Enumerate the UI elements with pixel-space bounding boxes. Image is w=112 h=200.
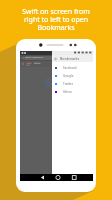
button[interactable]: Yahoo bbox=[52, 88, 93, 96]
staticText: https://www.goo bbox=[25, 56, 44, 59]
staticText: Facebook bbox=[63, 66, 77, 70]
staticText: Swift on screen from right to left to op… bbox=[0, 7, 112, 32]
button[interactable]: Back bbox=[52, 55, 60, 62]
button[interactable]: Twitter bbox=[52, 80, 93, 88]
staticText: Twitter bbox=[63, 82, 74, 86]
staticText: o bbox=[51, 77, 56, 88]
staticText: o bbox=[56, 77, 61, 88]
button[interactable]: Google bbox=[52, 72, 93, 80]
staticText: Google bbox=[63, 74, 74, 78]
button[interactable]: Facebook bbox=[52, 64, 93, 72]
staticText: Yahoo bbox=[63, 90, 72, 94]
staticText: Bookmarks bbox=[60, 56, 80, 61]
staticText: G bbox=[45, 77, 51, 88]
